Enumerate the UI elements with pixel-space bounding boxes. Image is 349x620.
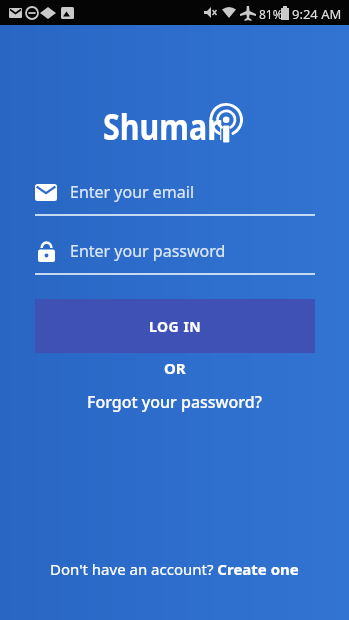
button[interactable]: LOG IN xyxy=(35,299,315,353)
staticText: LOG IN xyxy=(149,317,202,336)
staticText: 81% xyxy=(259,6,283,22)
staticText: 9:24 AM xyxy=(292,5,342,23)
button[interactable]: Enter your password xyxy=(35,233,315,269)
staticText: Shuman xyxy=(103,102,221,146)
staticText: Enter your email xyxy=(70,181,195,203)
staticText: Enter your password xyxy=(70,240,226,262)
button[interactable]: Enter your email xyxy=(35,174,315,210)
button[interactable]: Forgot your password? xyxy=(87,391,262,413)
staticText: Don't have an account? Create one xyxy=(50,559,299,579)
button[interactable]: Don't have an account? Create one xyxy=(50,559,299,579)
staticText: Forgot your password? xyxy=(87,391,262,413)
staticText: OR xyxy=(164,358,186,378)
